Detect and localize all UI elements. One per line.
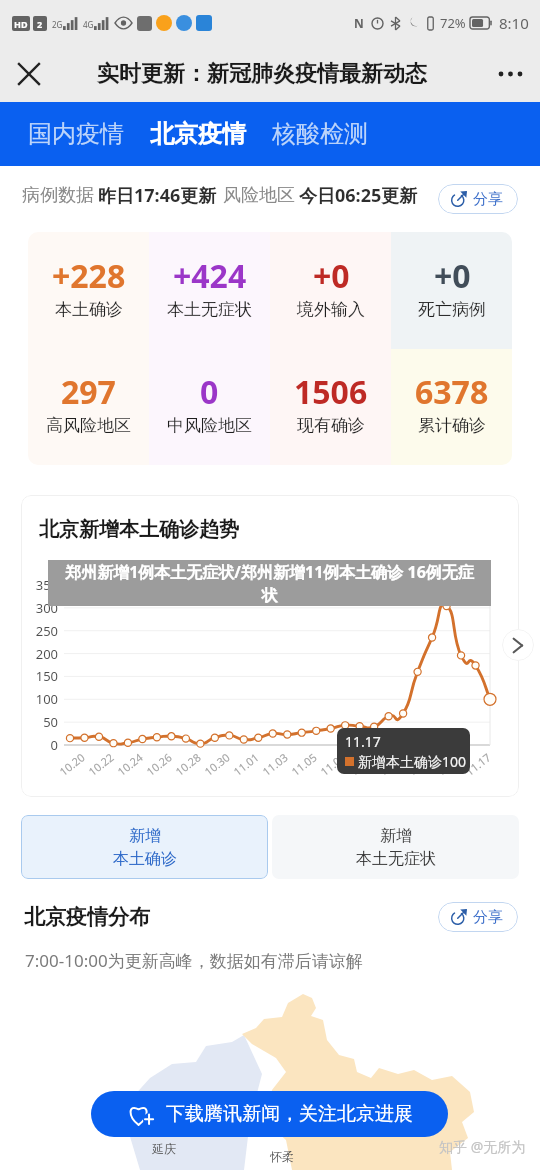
staticText: 11.07: [316, 750, 349, 779]
staticText: 10.26: [142, 750, 175, 779]
button[interactable]: 北京疫情: [141, 108, 255, 160]
staticText: +228: [52, 254, 126, 298]
staticText: 1506: [294, 370, 368, 414]
staticText: 11.17: [461, 750, 494, 779]
staticText: +0: [434, 254, 471, 298]
button[interactable]: 新增 本土确诊: [21, 815, 268, 879]
button[interactable]: 下载腾讯新闻，关注北京进展: [91, 1091, 448, 1137]
staticText: 境外输入: [297, 299, 365, 320]
staticText: 累计确诊: [418, 415, 486, 436]
button[interactable]: 297: [28, 349, 149, 465]
button[interactable]: 6378: [391, 349, 512, 465]
staticText: 北京疫情分布: [24, 904, 150, 930]
staticText: 今日06:25更新: [299, 183, 418, 208]
staticText: 核酸检测: [272, 119, 368, 149]
staticText: 北京疫情: [150, 119, 246, 149]
button[interactable]: 核酸检测: [263, 108, 377, 160]
staticText: 6378: [415, 370, 489, 414]
staticText: 10.22: [84, 750, 117, 779]
button[interactable]: Next chart: [502, 629, 534, 661]
staticText: 新增本土确诊100: [358, 752, 467, 771]
staticText: 实时更新：新冠肺炎疫情最新动态: [97, 60, 427, 88]
staticText: 0: [21, 736, 58, 754]
staticText: 11.09: [345, 750, 378, 779]
button[interactable]: Close: [10, 55, 48, 93]
staticText: 10.30: [200, 750, 233, 779]
staticText: 0: [200, 370, 219, 414]
button[interactable]: +0: [270, 232, 391, 349]
staticText: 高风险地区: [46, 415, 131, 436]
staticText: 延庆: [152, 1141, 176, 1156]
staticText: 100: [21, 690, 58, 708]
staticText: 知乎 @无所为: [439, 1137, 526, 1156]
staticText: 350: [21, 576, 58, 594]
staticText: 10.28: [171, 750, 204, 779]
staticText: 50: [21, 713, 58, 731]
staticText: 2: [37, 18, 43, 30]
staticText: 11.13: [403, 750, 436, 779]
staticText: 10.20: [55, 750, 88, 779]
staticText: 11.15: [432, 750, 465, 779]
staticText: 下载腾讯新闻，关注北京进展: [166, 1102, 413, 1126]
staticText: 11.17: [345, 732, 381, 751]
staticText: N: [354, 15, 364, 31]
staticText: 中风险地区: [167, 415, 252, 436]
button[interactable]: +228: [28, 232, 149, 349]
staticText: 病例数据: [22, 184, 94, 207]
staticText: 4G: [83, 19, 94, 30]
staticText: 8:10: [499, 13, 529, 33]
staticText: 死亡病例: [418, 299, 486, 320]
button[interactable]: More options: [492, 55, 530, 93]
staticText: 郑州新增1例本土无症状/郑州新增11例本土确诊 16例无症状: [59, 561, 480, 606]
staticText: 国内疫情: [28, 119, 124, 149]
staticText: 本土无症状: [167, 299, 252, 320]
button[interactable]: +0: [391, 232, 512, 349]
staticText: 10.24: [113, 750, 146, 779]
button[interactable]: 国内疫情: [19, 108, 133, 160]
staticText: 本土确诊: [55, 299, 123, 320]
staticText: HD: [14, 18, 28, 30]
staticText: 怀柔: [270, 1149, 294, 1164]
staticText: +0: [313, 254, 350, 298]
staticText: 11.03: [258, 750, 291, 779]
staticText: 2G: [52, 19, 63, 30]
staticText: 风险地区: [223, 184, 295, 207]
staticText: 11.01: [229, 750, 262, 779]
staticText: 分享: [473, 190, 503, 209]
staticText: 7:00-10:00为更新高峰，数据如有滞后请谅解: [25, 949, 363, 972]
staticText: 新增 本土确诊: [113, 826, 177, 869]
staticText: 250: [21, 622, 58, 640]
staticText: 现有确诊: [297, 415, 365, 436]
staticText: 分享: [473, 908, 503, 927]
button[interactable]: 1506: [270, 349, 391, 465]
staticText: 150: [21, 667, 58, 685]
staticText: 72%: [440, 14, 466, 32]
staticText: 297: [61, 370, 116, 414]
button[interactable]: 0: [149, 349, 270, 465]
button[interactable]: +424: [149, 232, 270, 349]
staticText: +424: [173, 254, 247, 298]
staticText: 300: [21, 599, 58, 617]
staticText: 11.11: [374, 750, 407, 779]
staticText: 昨日17:46更新: [98, 183, 217, 208]
staticText: 新增 本土无症状: [356, 826, 436, 869]
staticText: 北京新增本土确诊趋势: [39, 517, 239, 542]
staticText: 11.05: [287, 750, 320, 779]
staticText: 200: [21, 645, 58, 663]
button[interactable]: 分享: [438, 902, 518, 932]
button[interactable]: 新增 本土无症状: [272, 815, 519, 879]
button[interactable]: 分享: [438, 184, 518, 214]
